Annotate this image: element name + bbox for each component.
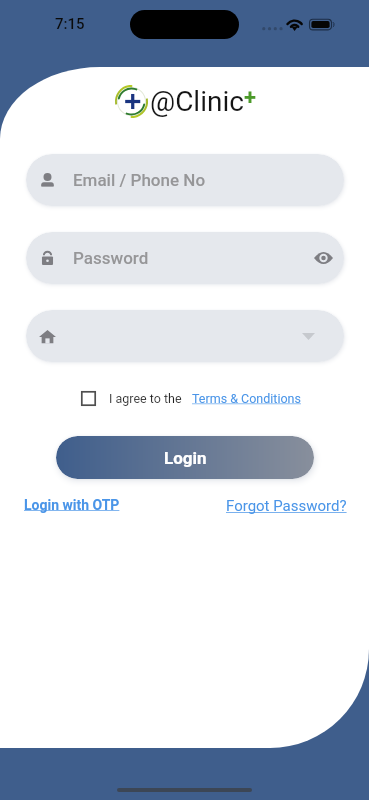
button[interactable]: Open dropdown (302, 323, 333, 349)
button[interactable]: Terms & Conditions (192, 391, 301, 406)
button[interactable]: Login (56, 436, 314, 479)
button[interactable]: Login with OTP (24, 497, 120, 513)
button[interactable]: I agree to the (81, 391, 182, 406)
button[interactable]: Open dropdown (26, 310, 344, 362)
button[interactable]: Show password (314, 245, 333, 271)
staticText: + (244, 85, 257, 111)
button[interactable]: Email / Phone No (26, 154, 344, 206)
button[interactable]: Forgot Password? (226, 497, 347, 515)
staticText: I agree to the (109, 391, 182, 406)
staticText: Login (164, 448, 207, 468)
staticText: @Clinic (150, 85, 244, 118)
staticText: 7:15 (55, 15, 85, 33)
staticText: Email / Phone No (73, 170, 206, 190)
button[interactable]: Password (26, 232, 344, 284)
staticText: Password (73, 248, 149, 268)
